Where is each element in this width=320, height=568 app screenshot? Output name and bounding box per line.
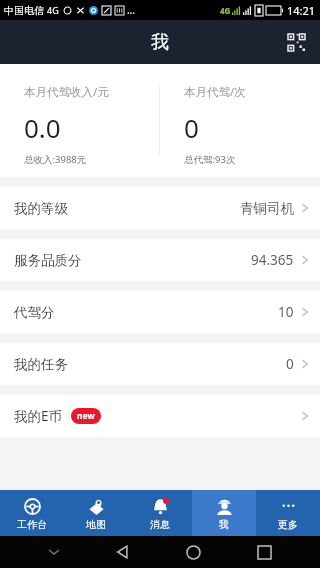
button[interactable]: 工作台 bbox=[0, 490, 64, 536]
staticText: … bbox=[127, 3, 135, 17]
button[interactable]: Home bbox=[178, 537, 208, 567]
staticText: 本月代驾收入/元 bbox=[24, 84, 109, 100]
staticText: 4G bbox=[220, 5, 231, 16]
button[interactable]: 我的E币 bbox=[0, 395, 320, 437]
button[interactable]: 代驾分 bbox=[0, 291, 320, 333]
staticText: 代驾分 bbox=[14, 304, 55, 321]
button[interactable]: Hide bbox=[41, 539, 67, 565]
staticText: 0 bbox=[286, 355, 294, 373]
button[interactable]: 消息 bbox=[128, 490, 192, 536]
staticText: 总代驾:93次 bbox=[184, 153, 236, 166]
staticText: 更多 bbox=[278, 518, 298, 531]
button[interactable]: Recents bbox=[249, 537, 279, 567]
button[interactable]: 服务品质分 bbox=[0, 239, 320, 281]
button[interactable]: Back bbox=[108, 537, 138, 567]
button[interactable]: 更多 bbox=[256, 490, 320, 536]
staticText: 服务品质分 bbox=[14, 252, 82, 269]
staticText: 4G bbox=[47, 4, 59, 16]
staticText: 消息 bbox=[150, 518, 170, 531]
staticText: 总收入:3988元 bbox=[24, 153, 87, 166]
staticText: 我的E币 bbox=[14, 407, 63, 425]
staticText: 我 bbox=[151, 31, 169, 54]
staticText: 我 bbox=[219, 518, 229, 531]
staticText: 我的等级 bbox=[14, 200, 68, 217]
staticText: 我的任务 bbox=[14, 356, 68, 373]
staticText: 94.365 bbox=[251, 251, 294, 269]
button[interactable]: 我的等级 bbox=[0, 187, 320, 229]
button[interactable]: 地图 bbox=[64, 490, 128, 536]
staticText: 0.0 bbox=[24, 110, 61, 145]
staticText: 工作台 bbox=[17, 518, 47, 531]
staticText: 10 bbox=[278, 303, 294, 321]
staticText: 青铜司机 bbox=[240, 200, 294, 217]
staticText: new bbox=[77, 410, 95, 422]
button[interactable]: 扫一扫 bbox=[282, 28, 310, 56]
button[interactable]: 我 bbox=[192, 490, 256, 536]
button[interactable]: 我的任务 bbox=[0, 343, 320, 385]
staticText: 14:21 bbox=[287, 3, 316, 18]
staticText: 地图 bbox=[86, 518, 106, 531]
staticText: 0 bbox=[184, 110, 199, 145]
staticText: 中国电信 bbox=[4, 4, 44, 17]
staticText: 本月代驾/次 bbox=[184, 84, 246, 100]
